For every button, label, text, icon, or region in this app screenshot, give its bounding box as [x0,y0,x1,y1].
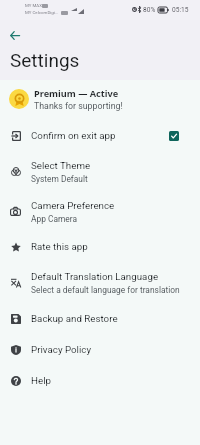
button[interactable]: Privacy Policy [0,337,200,368]
staticText: Settings [10,49,80,71]
button[interactable]: Default Translation Language [0,264,200,305]
staticText: Help [31,375,51,386]
staticText: MY MAXIS [25,3,46,8]
staticText: MY CelcomDigi... [25,10,59,15]
staticText: 05:15 [172,6,189,14]
staticText: App Camera [31,214,78,224]
staticText: Thanks for supporting! [34,101,123,111]
button[interactable]: Confirm on exit app [0,123,200,154]
staticText: Backup and Restore [31,313,118,324]
staticText: Select a default language for translatio… [31,285,180,295]
button[interactable]: Premium — Active [0,80,200,121]
staticText: Select Theme [31,160,91,171]
staticText: Default Translation Language [31,271,159,282]
staticText: 80% [143,6,156,14]
button[interactable]: Back [4,24,26,46]
button[interactable]: Rate this app [0,234,200,265]
button[interactable]: Backup and Restore [0,306,200,337]
button[interactable]: Help [0,368,200,399]
staticText: System Default [31,174,88,184]
button[interactable]: Confirm on exit app [169,131,179,141]
button[interactable]: Select Theme [0,153,200,194]
button[interactable]: Camera Preference [0,193,200,234]
staticText: Camera Preference [31,200,115,211]
staticText: Privacy Policy [31,344,92,355]
staticText: Rate this app [31,241,88,252]
staticText: Premium — Active [34,87,119,100]
staticText: Confirm on exit app [31,130,116,141]
